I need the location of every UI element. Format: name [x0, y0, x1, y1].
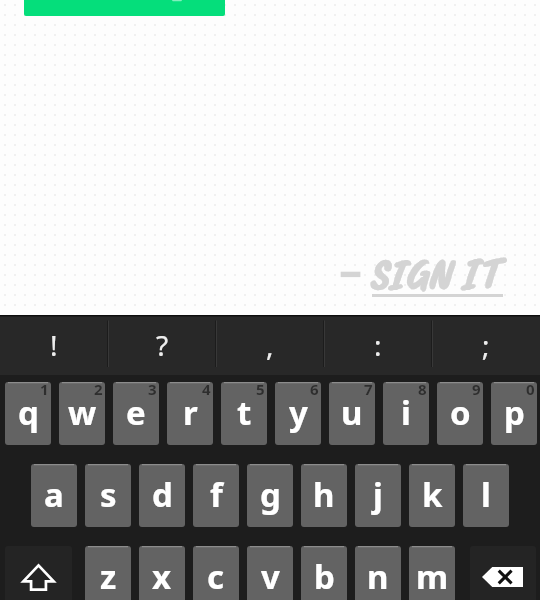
staticText: f [210, 472, 223, 517]
button[interactable]: 9 [437, 382, 483, 445]
staticText: 6 [310, 382, 319, 399]
button[interactable]: a [31, 464, 77, 527]
button[interactable]: b [301, 546, 347, 600]
staticText: o [450, 390, 471, 435]
staticText: h [313, 472, 335, 517]
button[interactable]: f [193, 464, 239, 527]
staticText: 2 [94, 382, 103, 399]
button[interactable]: Shift [5, 546, 72, 600]
staticText: 0 [526, 382, 535, 399]
staticText: m [416, 554, 449, 599]
button[interactable]: 3 [113, 382, 159, 445]
staticText: 5 [256, 382, 265, 399]
button[interactable]: Delete [470, 546, 536, 600]
button[interactable]: ? [108, 315, 216, 375]
button[interactable]: g [247, 464, 293, 527]
button[interactable]: 5 [221, 382, 267, 445]
staticText: j [373, 472, 383, 517]
button[interactable]: j [355, 464, 401, 527]
staticText: v [261, 554, 280, 599]
button[interactable]: v [247, 546, 293, 600]
button[interactable]: 7 [329, 382, 375, 445]
button[interactable]: c [193, 546, 239, 600]
button[interactable]: 1 [5, 382, 51, 445]
staticText: ? [156, 326, 169, 364]
button[interactable]: 6 [275, 382, 321, 445]
staticText: u [341, 390, 363, 435]
staticText: l [481, 472, 491, 517]
staticText: z [100, 554, 117, 599]
staticText: g [260, 472, 281, 517]
staticText: q [18, 390, 39, 435]
staticText: p [504, 390, 525, 435]
button[interactable]: m [409, 546, 455, 600]
button[interactable]: , [216, 315, 324, 375]
staticText: y [289, 390, 308, 435]
staticText: ! [50, 326, 58, 364]
button[interactable]: k [409, 464, 455, 527]
staticText: c [207, 554, 225, 599]
staticText: ; [482, 326, 490, 364]
staticText: 7 [364, 382, 373, 399]
button[interactable]: x [139, 546, 185, 600]
button[interactable]: ! [0, 315, 108, 375]
staticText: d [152, 472, 173, 517]
button[interactable]: 2 [59, 382, 105, 445]
button[interactable]: 4 [167, 382, 213, 445]
staticText: 9 [472, 382, 481, 399]
button[interactable]: : [324, 315, 432, 375]
button[interactable]: h [301, 464, 347, 527]
staticText: : [374, 326, 382, 364]
staticText: n [367, 554, 389, 599]
staticText: 3 [148, 382, 157, 399]
staticText: 1 [40, 382, 49, 399]
staticText: SIGN IT [369, 246, 499, 301]
staticText: x [152, 554, 172, 599]
staticText: b [314, 554, 335, 599]
button[interactable]: s [85, 464, 131, 527]
staticText: k [422, 472, 443, 517]
staticText: s [100, 472, 117, 517]
button[interactable]: SIGN IT [338, 246, 510, 301]
button[interactable]: 0 [491, 382, 537, 445]
staticText: , [266, 326, 274, 364]
staticText: r [183, 390, 198, 435]
button[interactable]: z [85, 546, 131, 600]
staticText: a [44, 472, 64, 517]
button[interactable]: Save signature [24, 0, 225, 16]
button[interactable]: d [139, 464, 185, 527]
staticText: i [401, 390, 411, 435]
staticText: w [68, 390, 97, 435]
button[interactable]: n [355, 546, 401, 600]
button[interactable]: 8 [383, 382, 429, 445]
button[interactable]: l [463, 464, 509, 527]
staticText: e [126, 390, 146, 435]
button[interactable]: ; [432, 315, 540, 375]
staticText: 8 [418, 382, 427, 399]
staticText: 4 [202, 382, 211, 399]
staticText: t [237, 390, 252, 435]
